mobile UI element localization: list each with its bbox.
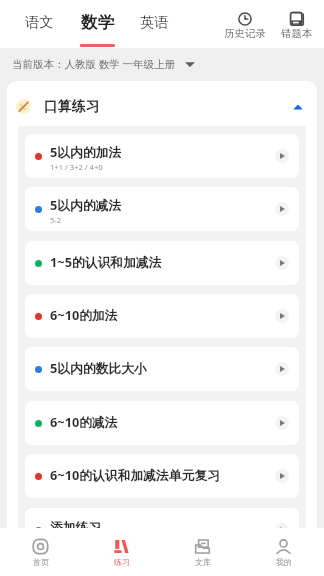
button[interactable]: 6~10的减法 — [25, 401, 299, 445]
button[interactable]: 语文 — [11, 0, 68, 48]
button[interactable]: 5以内的减法 — [25, 187, 299, 231]
staticText: 5以内的数比大小 — [50, 359, 147, 376]
staticText: 文库 — [195, 557, 211, 567]
staticText: 我的 — [276, 557, 292, 567]
button[interactable]: 口算练习 — [7, 81, 317, 126]
button[interactable]: 英语 — [126, 0, 183, 48]
button[interactable]: 1~5的认识和加减法 — [25, 241, 299, 285]
staticText: 当前版本：人教版 数学 一年级上册 — [12, 57, 175, 71]
staticText: 口算练习 — [44, 98, 100, 115]
staticText: 1+1 / 3+2 / 4+0 — [50, 162, 103, 172]
button[interactable]: Start practice — [275, 202, 289, 216]
button[interactable]: Start practice — [275, 309, 289, 323]
staticText: 5-2 — [50, 215, 62, 225]
button[interactable]: Start practice — [275, 469, 289, 483]
button[interactable]: Start practice — [275, 256, 289, 270]
button[interactable]: 6~10的加法 — [25, 294, 299, 338]
staticText: 5以内的加法 — [50, 143, 122, 160]
button[interactable]: Start practice — [275, 416, 289, 430]
staticText: 英语 — [140, 13, 169, 31]
button[interactable]: 历史记录 — [222, 0, 268, 48]
button[interactable]: 错题本 — [274, 0, 320, 48]
staticText: 首页 — [33, 557, 49, 567]
button[interactable]: 练习 — [81, 528, 162, 576]
staticText: 历史记录 — [224, 27, 266, 40]
button[interactable]: 我的 — [243, 528, 324, 576]
button[interactable]: 添加练习 — [25, 508, 299, 552]
staticText: 添加练习 — [50, 520, 102, 536]
staticText: 数学 — [81, 12, 114, 33]
button[interactable]: 5以内的加法 — [25, 134, 299, 178]
button[interactable]: Start practice — [275, 362, 289, 376]
button[interactable]: 数学 — [68, 0, 126, 48]
staticText: 5以内的减法 — [50, 196, 122, 213]
staticText: 错题本 — [281, 27, 313, 40]
button[interactable]: Collapse section — [286, 95, 310, 119]
staticText: 练习 — [114, 557, 130, 567]
staticText: 6~10的认识和加减法单元复习 — [50, 466, 221, 483]
button[interactable]: Start practice — [275, 149, 289, 163]
button[interactable]: 当前版本：人教版 数学 一年级上册 — [12, 56, 195, 70]
button[interactable]: 首页 — [0, 528, 81, 576]
staticText: 6~10的加法 — [50, 306, 118, 323]
staticText: 1~5的认识和加减法 — [50, 253, 162, 270]
button[interactable]: 文库 — [162, 528, 243, 576]
button[interactable]: 6~10的认识和加减法单元复习 — [25, 454, 299, 498]
staticText: 语文 — [25, 13, 54, 31]
button[interactable]: Start practice — [275, 523, 289, 537]
button[interactable]: 5以内的数比大小 — [25, 347, 299, 391]
staticText: 6~10的减法 — [50, 413, 118, 430]
